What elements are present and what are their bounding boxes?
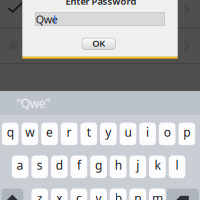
staticText: y <box>105 124 111 140</box>
staticText: d <box>56 157 63 173</box>
button[interactable]: p <box>178 123 195 145</box>
staticText: o <box>164 124 171 140</box>
staticText: OK <box>92 37 105 49</box>
staticText: n <box>134 190 141 200</box>
button[interactable]: h <box>110 156 126 178</box>
button[interactable]: a <box>12 156 28 178</box>
button[interactable]: j <box>129 156 146 178</box>
staticText: g <box>95 157 102 173</box>
button[interactable]: w <box>22 123 38 145</box>
staticText: t <box>87 124 91 140</box>
button[interactable]: l <box>169 156 185 178</box>
staticText: l <box>175 157 178 173</box>
staticText: b <box>115 190 122 200</box>
button[interactable]: e <box>41 123 58 145</box>
staticText: e <box>46 124 53 140</box>
staticText: Enter Password <box>65 0 136 7</box>
staticText: x <box>56 190 62 200</box>
button[interactable]: x <box>51 188 68 200</box>
button[interactable]: n <box>129 188 146 200</box>
button[interactable]: r <box>61 123 77 145</box>
button[interactable]: g <box>90 156 107 178</box>
staticText: v <box>95 190 101 200</box>
button[interactable]: z <box>31 188 48 200</box>
button[interactable]: t <box>80 123 97 145</box>
staticText: h <box>115 157 122 173</box>
button[interactable]: OK <box>82 38 116 50</box>
button[interactable]: s <box>31 156 48 178</box>
button[interactable]: Shift <box>1 188 23 200</box>
button[interactable]: k <box>149 156 166 178</box>
staticText: q <box>7 124 14 140</box>
button[interactable]: f <box>71 156 87 178</box>
button[interactable]: v <box>90 188 107 200</box>
staticText: a <box>17 157 24 173</box>
staticText: “Qwe” <box>17 95 50 111</box>
button[interactable]: q <box>2 123 18 145</box>
staticText: u <box>124 124 131 140</box>
staticText: z <box>37 190 43 200</box>
staticText: j <box>136 157 139 173</box>
button[interactable]: d <box>51 156 68 178</box>
button[interactable]: m <box>149 188 166 200</box>
button[interactable]: b <box>110 188 126 200</box>
staticText: k <box>154 157 160 173</box>
button[interactable]: Delete <box>167 188 199 200</box>
staticText: w <box>25 124 34 140</box>
staticText: r <box>67 124 72 140</box>
staticText: i <box>146 124 149 140</box>
staticText: s <box>37 157 43 173</box>
staticText: m <box>152 190 163 200</box>
staticText: p <box>183 124 190 140</box>
staticText: f <box>77 157 81 173</box>
button[interactable]: “Qwe” <box>0 91 66 115</box>
button[interactable]: i <box>139 123 156 145</box>
button[interactable]: u <box>120 123 136 145</box>
button[interactable]: o <box>159 123 175 145</box>
staticText: Qwe <box>36 12 58 26</box>
staticText: c <box>76 190 82 200</box>
button[interactable]: c <box>71 188 87 200</box>
button[interactable]: y <box>100 123 117 145</box>
